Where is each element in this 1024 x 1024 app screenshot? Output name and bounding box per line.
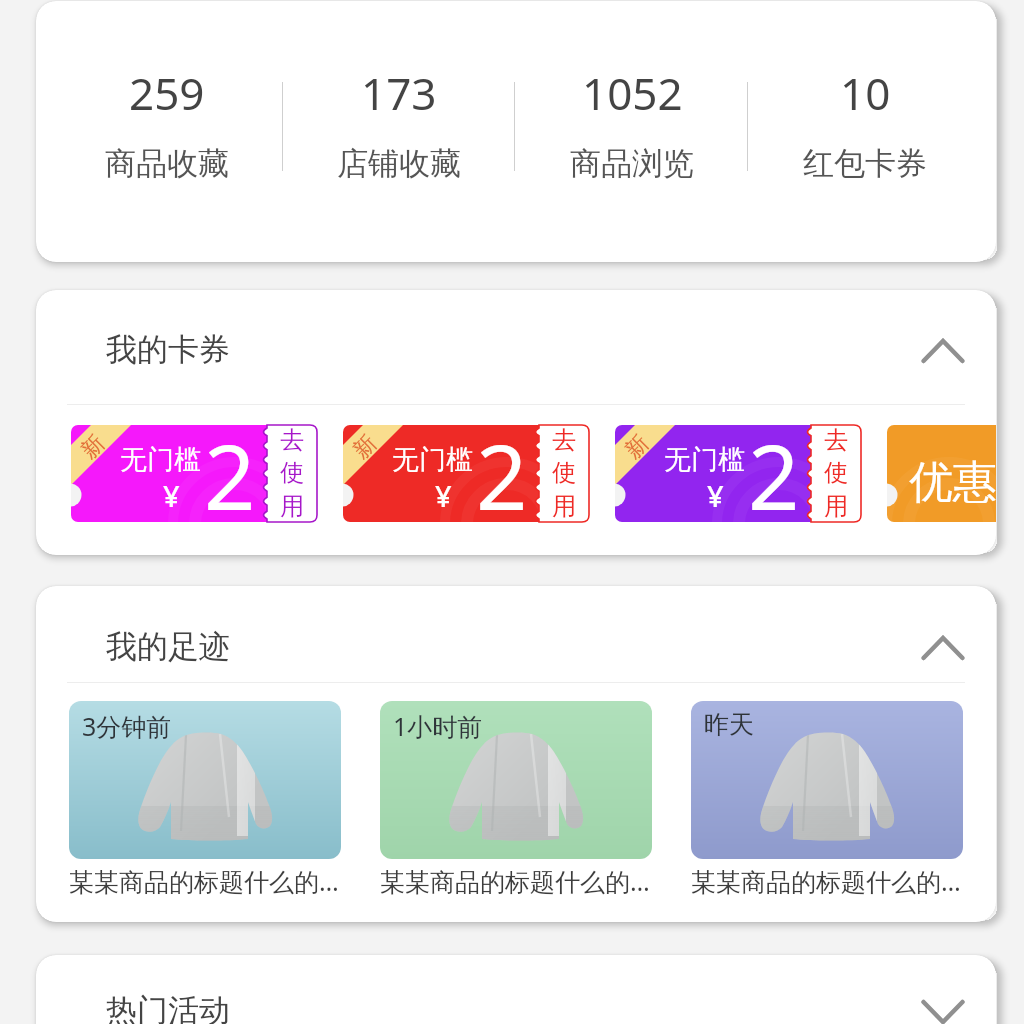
staticText: 新	[619, 429, 655, 465]
staticText: 无门槛	[392, 443, 473, 477]
staticText: 2	[476, 414, 528, 511]
staticText: 使	[824, 458, 848, 488]
button[interactable]: Expand	[912, 981, 974, 1024]
button[interactable]: 我的卡券	[36, 290, 996, 404]
staticText: 新	[75, 429, 111, 465]
staticText: 173	[361, 63, 437, 123]
button[interactable]: 昨天	[691, 701, 963, 898]
button[interactable]: 3分钟前	[69, 701, 341, 898]
button[interactable]: 259	[51, 1, 283, 262]
staticText: 1052	[582, 63, 683, 123]
button[interactable]: 新	[343, 425, 589, 522]
staticText: 使	[280, 458, 304, 488]
staticText: 店铺收藏	[337, 144, 461, 183]
staticText: 用	[280, 491, 304, 521]
button[interactable]: Collapse	[912, 617, 974, 679]
staticText: ¥	[435, 476, 452, 515]
staticText: 红包卡券	[803, 144, 927, 183]
staticText: 3分钟前	[82, 709, 172, 743]
staticText: 259	[129, 63, 205, 123]
staticText: 我的卡券	[106, 330, 230, 369]
staticText: 用	[824, 491, 848, 521]
button[interactable]: Collapse	[912, 320, 974, 382]
staticText: 去	[552, 425, 576, 455]
button[interactable]: 新	[615, 425, 861, 522]
button[interactable]: 173	[283, 1, 515, 262]
staticText: 1小时前	[393, 709, 483, 743]
staticText: 商品浏览	[570, 144, 694, 183]
staticText: 商品收藏	[105, 144, 229, 183]
staticText: 昨天	[704, 709, 754, 740]
staticText: 某某商品的标题什么的…	[691, 864, 961, 898]
button[interactable]: 10	[748, 1, 981, 262]
staticText: 优惠	[909, 455, 996, 510]
staticText: 无门槛	[120, 443, 201, 477]
staticText: 2	[748, 414, 800, 511]
staticText: 10	[840, 63, 891, 123]
staticText: 热门活动	[106, 991, 230, 1024]
button[interactable]: 1052	[515, 1, 748, 262]
staticText: 去	[280, 425, 304, 455]
staticText: 我的足迹	[106, 627, 230, 666]
button[interactable]: 我的足迹	[36, 586, 996, 682]
button[interactable]: 新	[71, 425, 317, 522]
staticText: 使	[552, 458, 576, 488]
staticText: ¥	[707, 476, 724, 515]
button[interactable]: 热门活动	[36, 955, 996, 1024]
staticText: 去	[824, 425, 848, 455]
staticText: 某某商品的标题什么的…	[380, 864, 650, 898]
staticText: 无门槛	[664, 443, 745, 477]
button[interactable]: 1小时前	[380, 701, 652, 898]
staticText: ¥	[163, 476, 180, 515]
button[interactable]: 优惠	[887, 425, 996, 522]
staticText: 新	[347, 429, 383, 465]
staticText: 用	[552, 491, 576, 521]
staticText: 某某商品的标题什么的…	[69, 864, 339, 898]
staticText: 2	[204, 414, 256, 511]
